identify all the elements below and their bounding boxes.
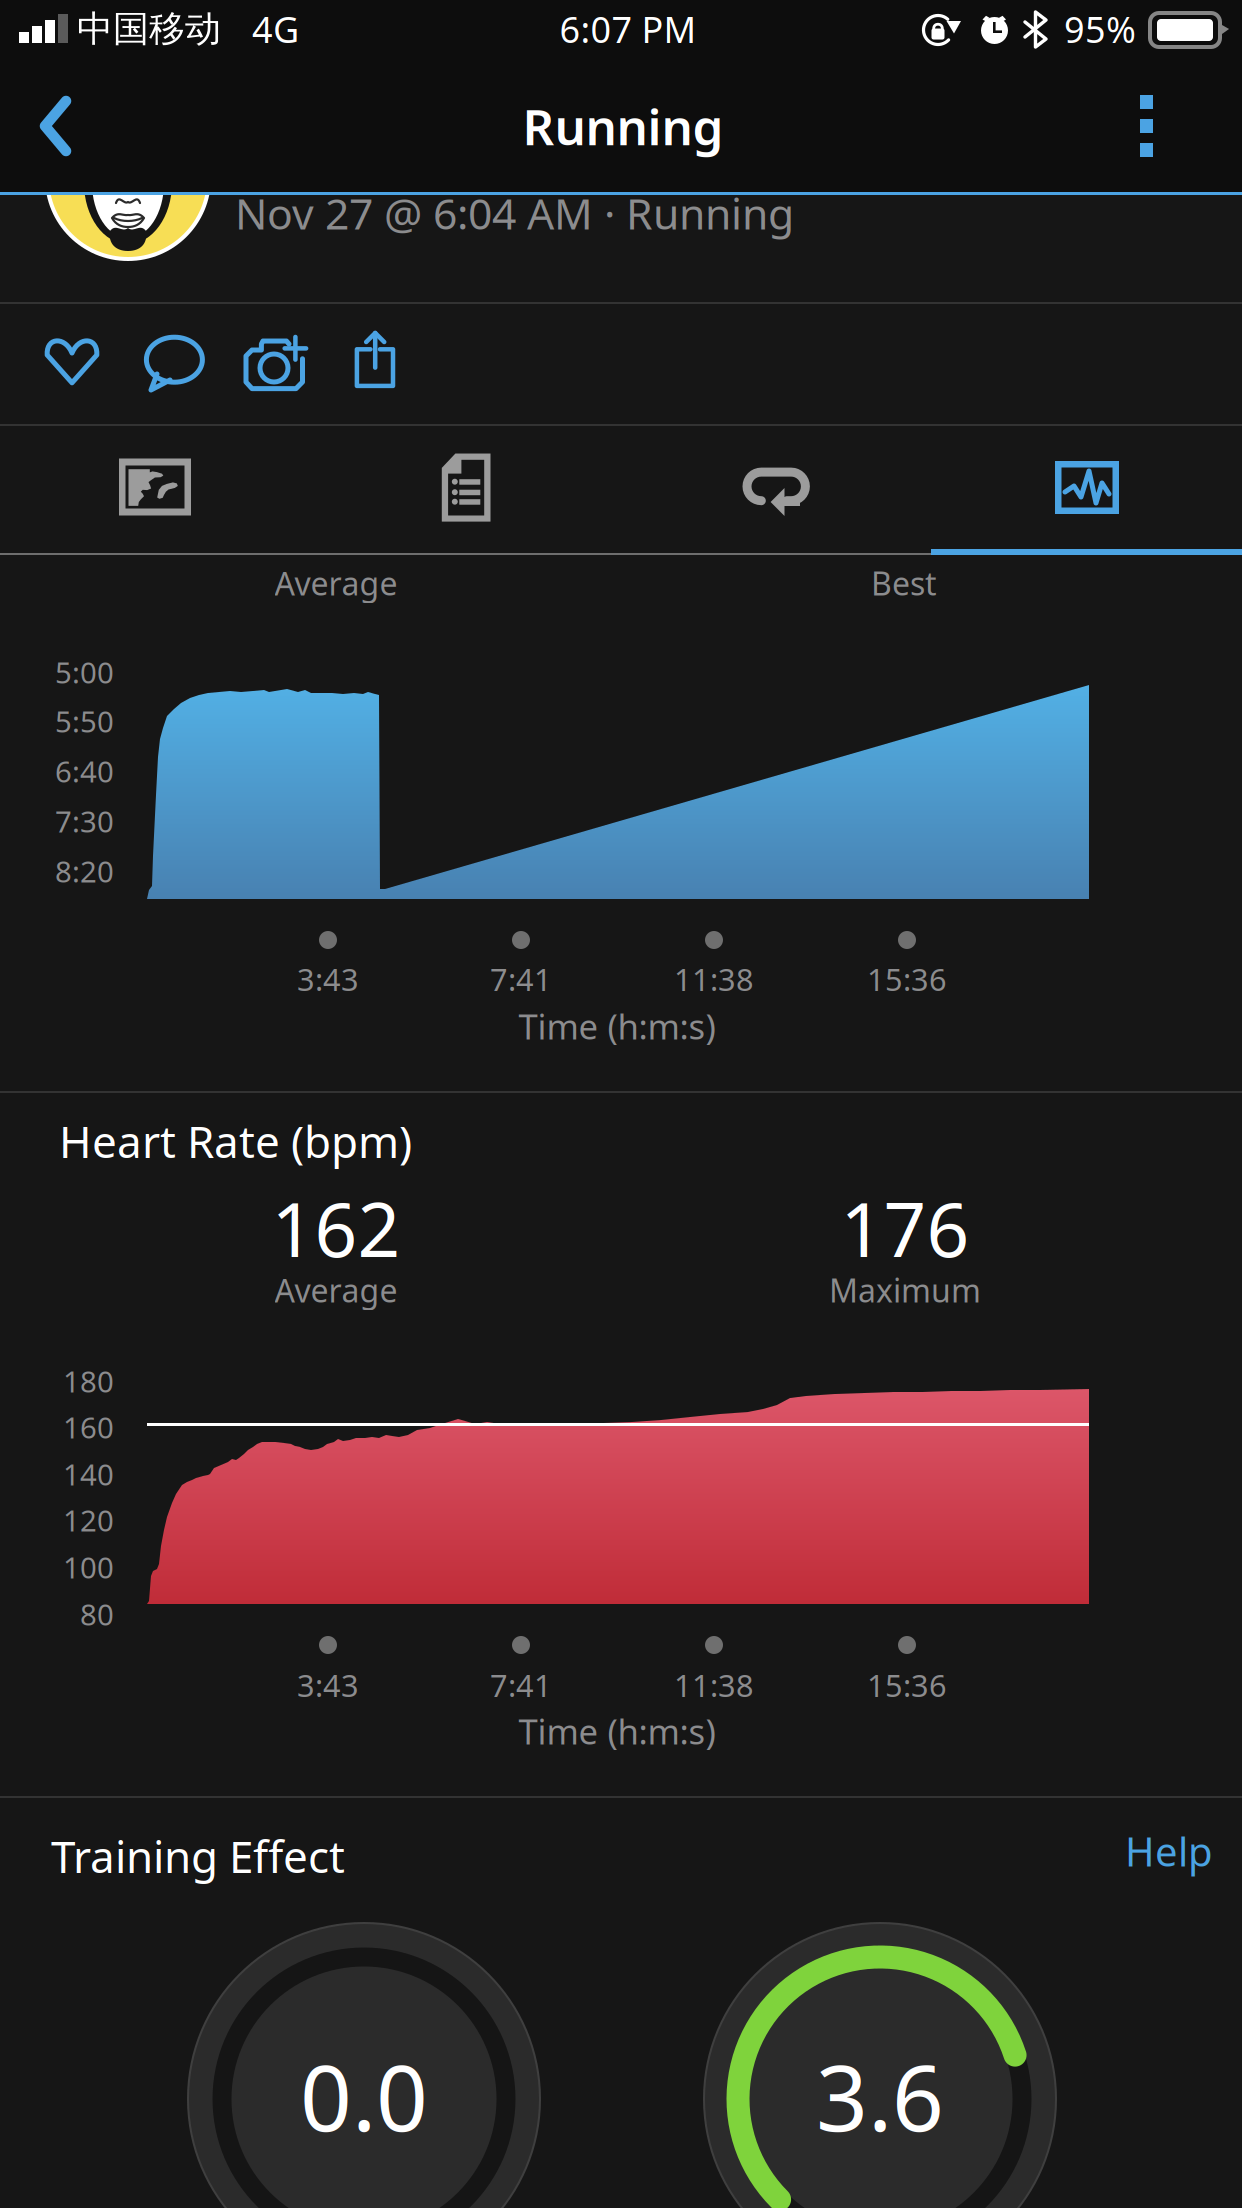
staticText: 8:20	[55, 851, 114, 890]
button[interactable]: Back	[0, 60, 112, 192]
staticText: Best	[871, 562, 937, 604]
button[interactable]: Map	[0, 426, 310, 553]
staticText: 7:41	[490, 959, 552, 999]
staticText: Training Effect	[51, 1827, 345, 1885]
staticText: 0.0	[300, 2036, 428, 2156]
staticText: Running	[522, 93, 723, 159]
staticText: 160	[63, 1407, 114, 1446]
staticText: Nov 27 @ 6:04 AM · Running	[235, 185, 794, 241]
button[interactable]: Laps	[621, 426, 931, 553]
button[interactable]: Help	[1063, 1803, 1213, 1899]
staticText: 100	[63, 1547, 114, 1586]
staticText: 11:38	[674, 1665, 754, 1705]
staticText: 3.6	[816, 2036, 944, 2156]
staticText: 4G	[252, 5, 299, 53]
staticText: Average	[274, 562, 397, 604]
button[interactable]: More options	[1107, 60, 1217, 192]
staticText: Average	[274, 1269, 397, 1311]
staticText: 6:07 PM	[559, 5, 696, 53]
staticText: Time (h:m:s)	[518, 1003, 715, 1049]
button[interactable]: Details	[311, 426, 621, 553]
staticText: 176	[840, 1178, 969, 1278]
staticText: 15:36	[867, 959, 947, 999]
staticText: 5:00	[55, 652, 114, 691]
staticText: Heart Rate (bpm)	[59, 1112, 412, 1170]
staticText: 11:38	[674, 959, 754, 999]
button[interactable]: Add photo	[223, 303, 327, 425]
staticText: 中国移动	[77, 7, 221, 51]
staticText: 162	[271, 1178, 400, 1278]
staticText: 6:40	[55, 751, 114, 790]
button[interactable]: Share	[320, 303, 424, 425]
button[interactable]: Like	[20, 303, 124, 425]
staticText: 95%	[1064, 5, 1136, 53]
staticText: Help	[1125, 1824, 1213, 1877]
staticText: 5:50	[55, 701, 114, 740]
button[interactable]: Comment	[124, 303, 228, 425]
staticText: Time (h:m:s)	[518, 1708, 715, 1754]
staticText: 3:43	[297, 959, 359, 999]
staticText: 140	[63, 1454, 114, 1493]
staticText: 120	[63, 1500, 114, 1539]
staticText: 7:41	[490, 1665, 552, 1705]
staticText: 15:36	[867, 1665, 947, 1705]
staticText: 7:30	[55, 801, 114, 840]
staticText: 80	[80, 1594, 114, 1633]
staticText: Maximum	[829, 1269, 981, 1311]
staticText: 180	[63, 1361, 114, 1400]
staticText: 3:43	[297, 1665, 359, 1705]
button[interactable]: Charts	[931, 426, 1242, 553]
